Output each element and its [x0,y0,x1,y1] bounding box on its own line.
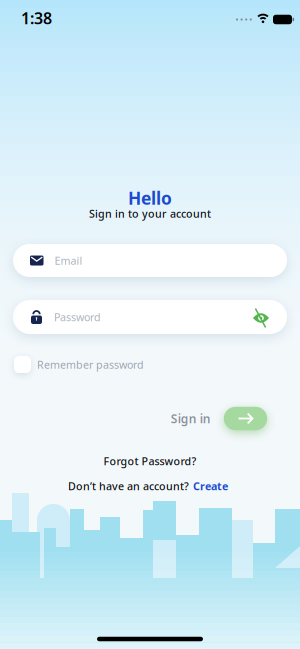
button[interactable]: Password [13,300,287,334]
button[interactable]: Create [193,479,228,493]
button[interactable]: Home [97,637,203,641]
staticText: Remember password [37,357,144,372]
staticText: Create [193,479,228,493]
button[interactable]: Sign in [171,407,267,430]
staticText: Sign in [171,410,211,426]
button[interactable]: Remember password [14,356,144,373]
staticText: Password [54,310,101,324]
staticText: Don’t have an account? [68,479,189,493]
staticText: Sign in to your account [89,206,211,221]
button[interactable]: Forgot Password? [103,454,196,468]
staticText: Hello [128,186,172,209]
staticText: Forgot Password? [103,454,196,468]
button[interactable]: Email [13,244,287,277]
staticText: 1:38 [21,7,52,29]
staticText: Email [54,253,82,268]
button[interactable]: Show password [252,310,270,326]
